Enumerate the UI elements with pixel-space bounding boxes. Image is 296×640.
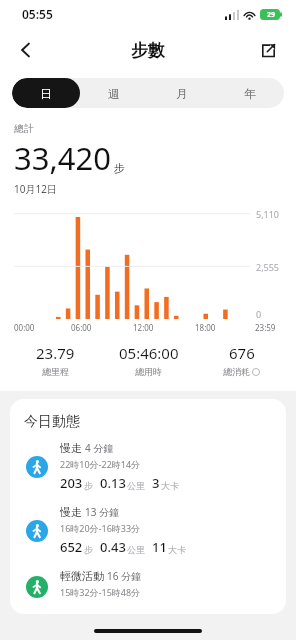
staticText: 步: [114, 161, 125, 175]
button[interactable]: 日: [12, 78, 80, 108]
button[interactable]: Share: [248, 30, 288, 70]
staticText: 步: [84, 544, 93, 555]
staticText: 05:46:00: [119, 343, 179, 363]
button[interactable]: 慢走: [24, 505, 272, 556]
staticText: 慢走: [60, 441, 82, 455]
staticText: 652: [60, 538, 83, 556]
staticText: 10月12日: [14, 182, 57, 196]
staticText: 總消耗: [223, 366, 250, 377]
staticText: 慢走: [60, 505, 82, 519]
button[interactable]: 慢走: [24, 441, 272, 492]
staticText: 00:00: [14, 322, 35, 333]
staticText: 年: [244, 86, 256, 101]
staticText: 今日動態: [24, 413, 80, 431]
button[interactable]: 676: [195, 343, 288, 377]
staticText: 公里: [127, 544, 145, 555]
staticText: 23:59: [255, 322, 276, 333]
staticText: 05:55: [22, 6, 53, 22]
staticText: 5,110: [256, 208, 280, 220]
staticText: 06:00: [71, 322, 92, 333]
staticText: 203: [60, 474, 83, 492]
staticText: 18:00: [195, 322, 216, 333]
staticText: 步: [84, 480, 93, 491]
staticText: 0: [256, 308, 262, 320]
button[interactable]: 23.79: [8, 343, 102, 377]
staticText: 33,420: [14, 137, 111, 179]
button[interactable]: Back: [6, 30, 46, 70]
staticText: 16 分鐘: [107, 569, 142, 583]
staticText: 11: [152, 538, 167, 556]
staticText: 總里程: [42, 366, 69, 377]
staticText: 大卡: [168, 544, 186, 555]
staticText: 2,555: [256, 261, 280, 273]
staticText: 15時32分-15時48分: [60, 586, 141, 598]
button[interactable]: 年: [216, 78, 284, 108]
staticText: 月: [176, 86, 188, 101]
staticText: 16時20分-16時33分: [60, 522, 141, 534]
staticText: 13 分鐘: [85, 505, 120, 519]
staticText: 676: [229, 343, 255, 363]
staticText: 0.13: [100, 474, 126, 492]
staticText: 總用時: [135, 366, 162, 377]
staticText: 3: [152, 474, 160, 492]
staticText: 12:00: [133, 322, 154, 333]
staticText: 4 分鐘: [85, 441, 114, 455]
staticText: 29: [267, 10, 276, 20]
staticText: 公里: [127, 480, 145, 491]
staticText: 23.79: [36, 343, 75, 363]
button[interactable]: 月: [148, 78, 216, 108]
button[interactable]: 輕微活動: [24, 569, 272, 604]
button[interactable]: 週: [80, 78, 148, 108]
staticText: 0.43: [100, 538, 126, 556]
staticText: 總計: [14, 122, 34, 135]
staticText: 週: [108, 86, 120, 101]
staticText: 輕微活動: [60, 569, 104, 583]
staticText: 大卡: [161, 480, 179, 491]
staticText: 步數: [131, 40, 165, 61]
staticText: 日: [40, 86, 52, 101]
button[interactable]: 05:46:00: [102, 343, 195, 377]
staticText: 22時10分-22時14分: [60, 458, 141, 470]
